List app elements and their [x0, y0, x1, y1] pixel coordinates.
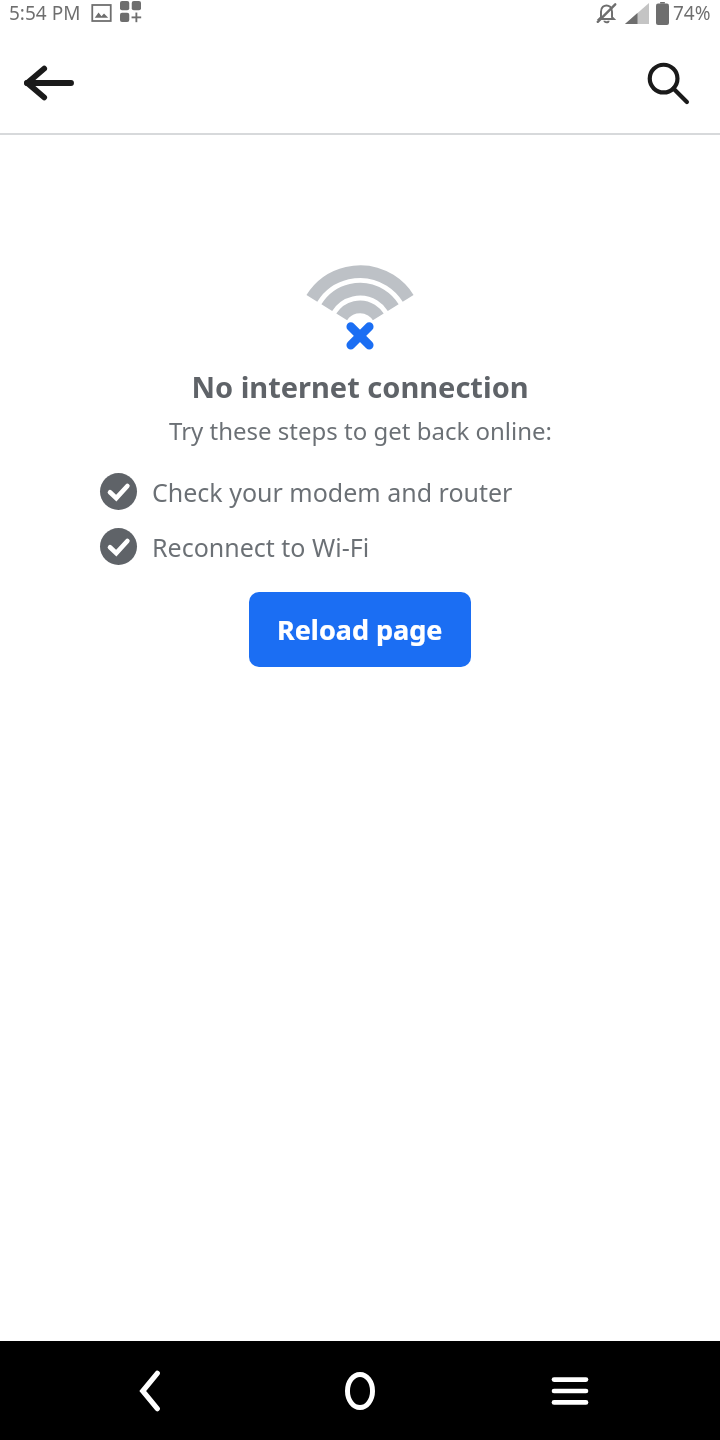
button[interactable]: Back — [90, 1341, 210, 1440]
button[interactable]: Reconnect to Wi-Fi — [100, 528, 620, 565]
staticText: 74% — [673, 0, 711, 26]
staticText: Reconnect to Wi-Fi — [152, 530, 370, 564]
staticText: No internet connection — [191, 367, 529, 406]
staticText: 5:54 PM — [9, 0, 81, 26]
button[interactable]: Reload page — [249, 592, 471, 667]
button[interactable]: Search — [624, 39, 712, 127]
button[interactable]: Back — [4, 39, 92, 127]
staticText: Check your modem and router — [152, 475, 513, 509]
button[interactable]: Check your modem and router — [100, 473, 620, 510]
staticText: Try these steps to get back online: — [169, 414, 552, 447]
button[interactable]: Home — [300, 1341, 420, 1440]
button[interactable]: Recent apps — [510, 1341, 630, 1440]
staticText: Reload page — [277, 611, 443, 648]
